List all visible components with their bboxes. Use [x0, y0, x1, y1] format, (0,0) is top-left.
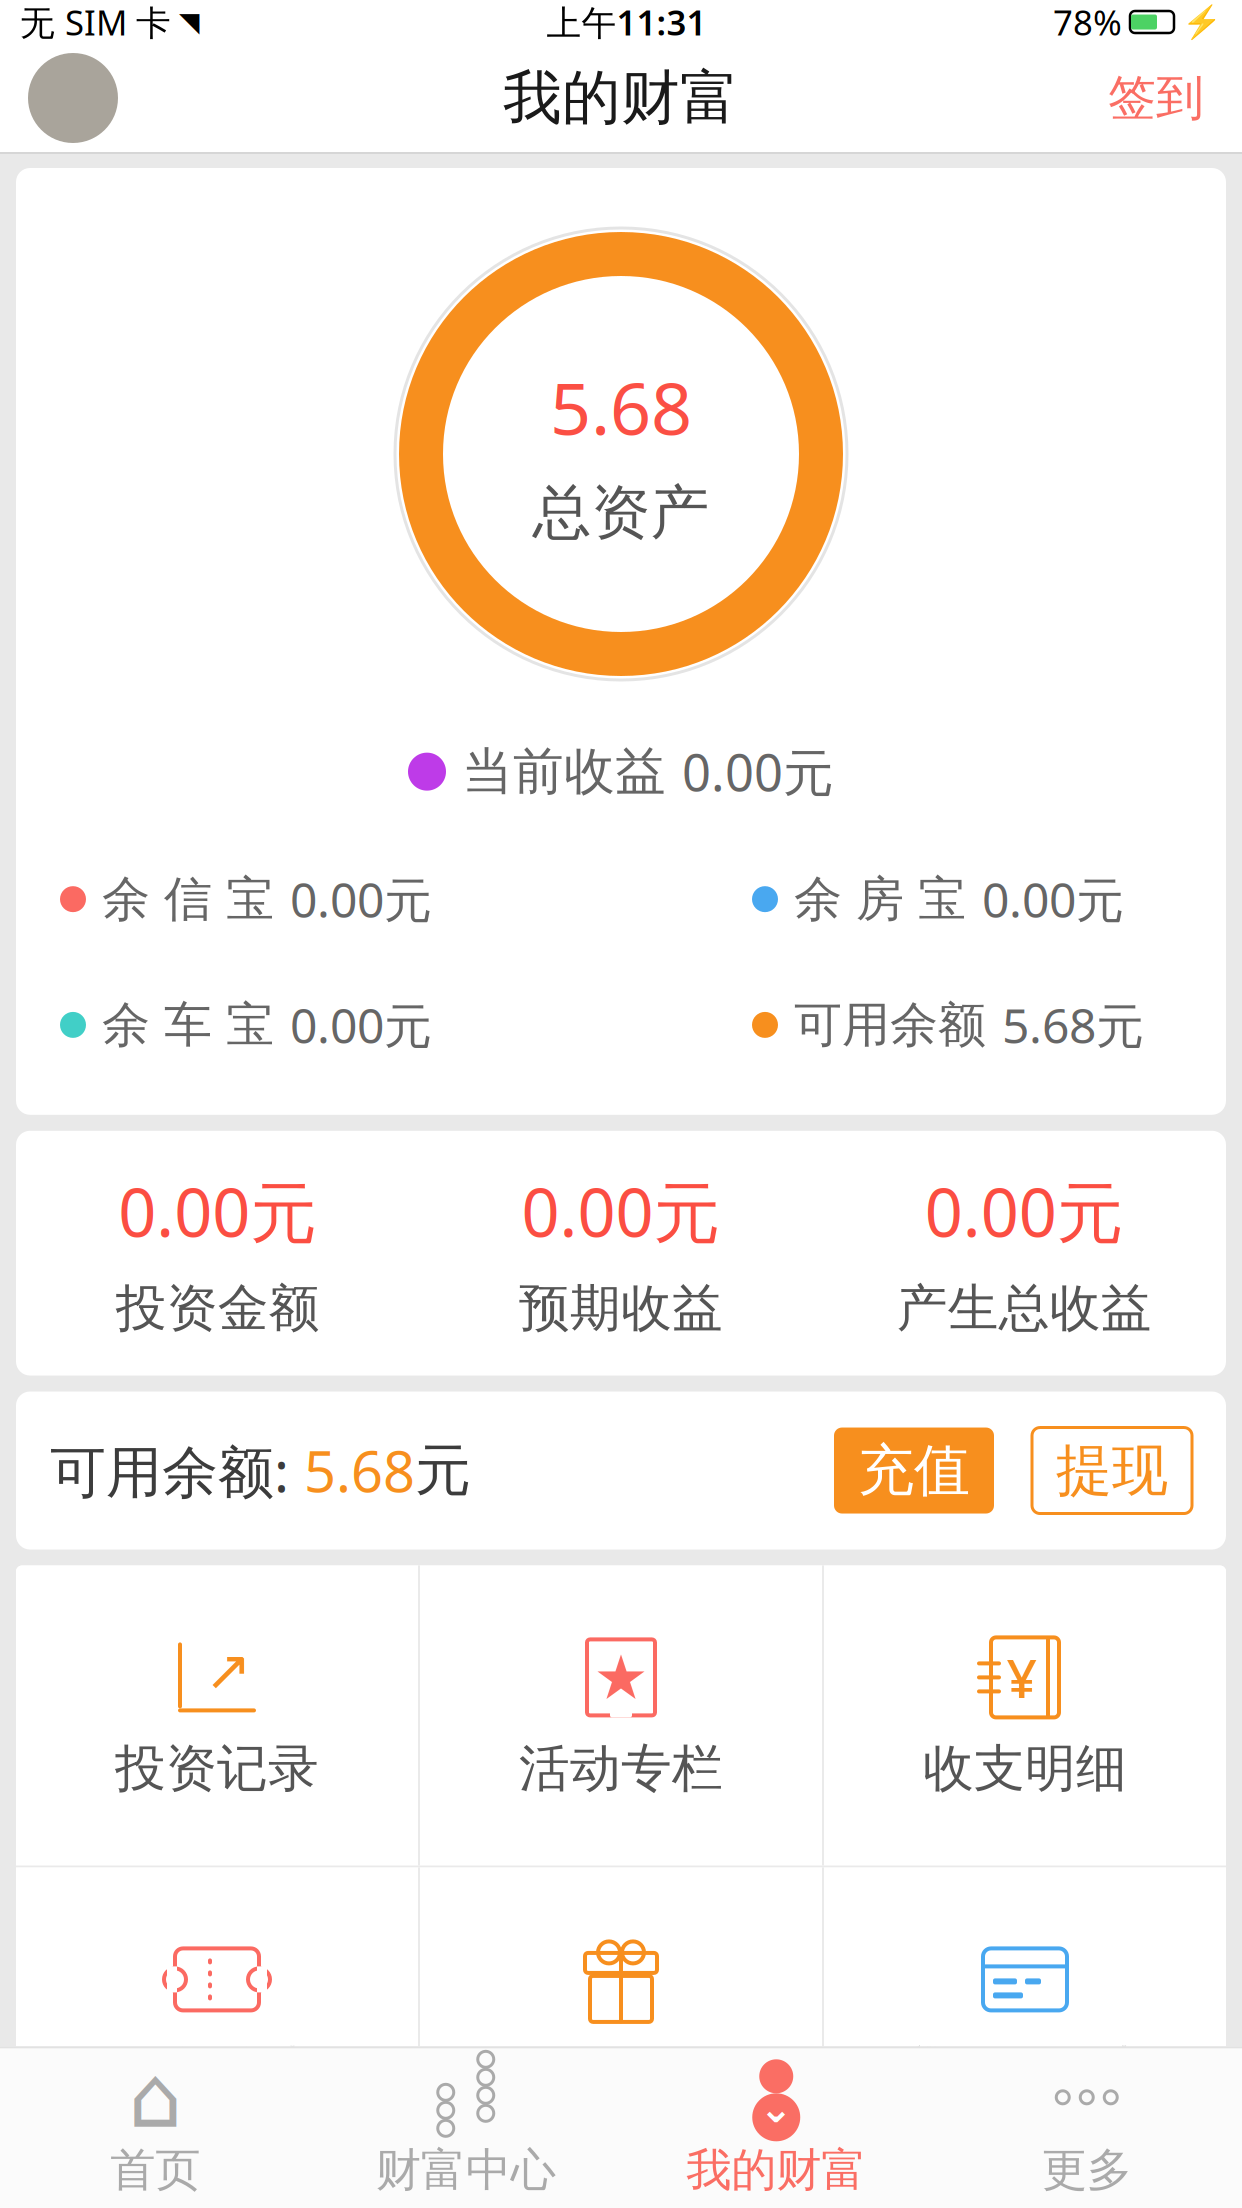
staticText: ¥ [1006, 1642, 1037, 1713]
staticText: 0.00元 [118, 1167, 317, 1255]
staticText: 提现 [1056, 1436, 1168, 1505]
staticText: 首页 [110, 2142, 200, 2198]
staticText: 财富中心 [376, 2142, 556, 2198]
button[interactable]: 充值 [834, 1427, 994, 1513]
staticText: 5.68 [550, 359, 692, 455]
staticText: 产生总收益 [897, 1277, 1152, 1339]
staticText: 无 SIM 卡 [20, 0, 171, 45]
staticText: 我的财富 [503, 62, 739, 134]
staticText: 5.68 [304, 1433, 415, 1508]
staticText: 余 车 宝 [102, 995, 274, 1054]
button[interactable]: 我的银行卡 [824, 1867, 1226, 2167]
staticText: 更多 [1042, 2142, 1132, 2198]
staticText: 活动专栏 [519, 1737, 723, 1800]
staticText: 总资产 [532, 477, 709, 549]
staticText: 上午11:31 [546, 0, 706, 45]
button[interactable]: ⌂ [0, 2048, 310, 2208]
button[interactable]: 提现 [1032, 1427, 1192, 1513]
button[interactable]: 红包奖券 [16, 1867, 418, 2167]
staticText: ⌂ [128, 2049, 182, 2146]
staticText: 预期收益 [519, 1277, 723, 1339]
button[interactable]: 财富中心 [310, 2048, 621, 2208]
staticText: 78% [1053, 0, 1122, 45]
staticText: 可用余额: [50, 1433, 304, 1508]
staticText: 5.68元 [1002, 993, 1144, 1057]
button[interactable]: ¥ [824, 1565, 1226, 1865]
button[interactable]: ↗ [16, 1565, 418, 1865]
staticText: ◥ [179, 7, 200, 37]
staticText: 0.00元 [982, 867, 1124, 931]
button[interactable]: ★ [420, 1565, 822, 1865]
staticText: 投资记录 [115, 1737, 319, 1800]
staticText: 收支明细 [923, 1737, 1127, 1800]
button[interactable]: 签到 [1098, 54, 1214, 141]
button[interactable]: 更多 [931, 2048, 1242, 2208]
staticText: ★ [593, 1643, 648, 1712]
staticText: 0.00元 [682, 738, 834, 805]
staticText: ⌄ [759, 2086, 793, 2131]
staticText: 我的财富 [686, 2142, 866, 2198]
staticText: 余 信 宝 [102, 870, 274, 929]
staticText: 我的银行卡 [897, 2039, 1152, 2102]
staticText: 余 房 宝 [794, 870, 966, 929]
staticText: 红包奖券 [115, 2039, 319, 2102]
button[interactable]: ⌄ [621, 2048, 931, 2208]
staticText: 投资金额 [116, 1277, 320, 1339]
staticText: 我的积分 [519, 2041, 723, 2104]
staticText: 0.00元 [521, 1167, 720, 1255]
staticText: ↗ [204, 1639, 251, 1702]
staticText: ⚡ [1182, 4, 1222, 40]
staticText: 0.00元 [925, 1167, 1124, 1255]
staticText: 0.00元 [290, 993, 432, 1057]
staticText: 签到 [1108, 68, 1204, 127]
staticText: 充值 [858, 1436, 970, 1505]
button[interactable]: 我的积分 [420, 1867, 822, 2167]
staticText: 0.00元 [290, 867, 432, 931]
staticText: 元 [415, 1436, 471, 1505]
staticText: 可用余额 [794, 995, 986, 1054]
button[interactable]: 个人头像 [28, 53, 118, 143]
staticText: 当前收益 [462, 740, 666, 803]
